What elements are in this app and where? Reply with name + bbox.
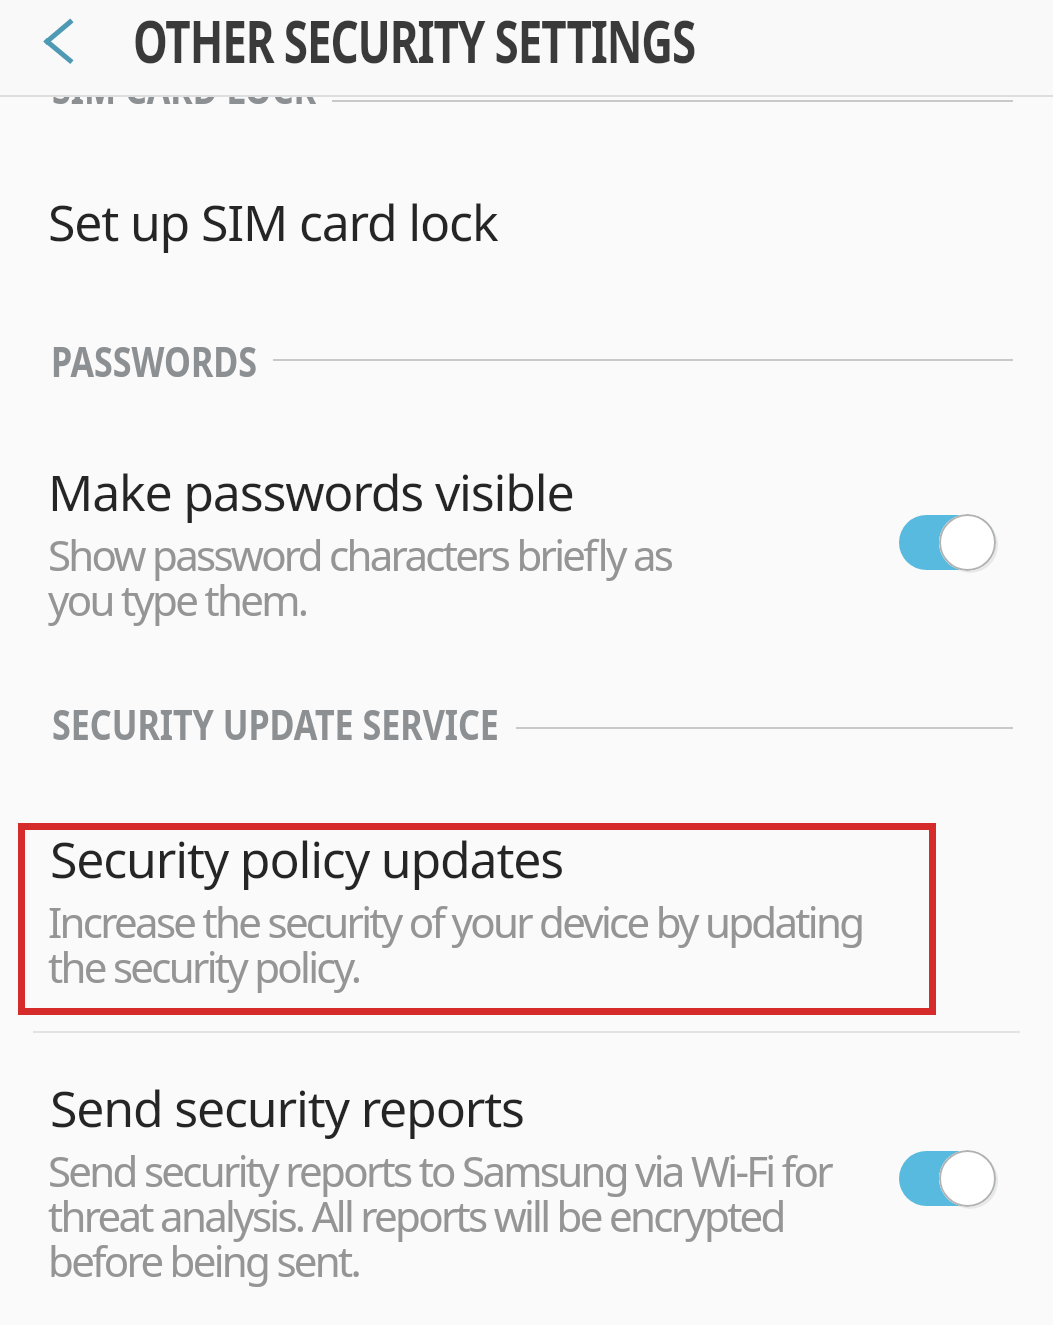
button[interactable] (899, 515, 996, 570)
button[interactable] (42, 16, 76, 68)
staticText: Security policy updates (50, 825, 563, 893)
button[interactable] (25, 830, 929, 1008)
staticText: Make passwords visible (48, 458, 574, 526)
staticText: Send security reports (50, 1074, 524, 1142)
staticText: Set up SIM card lock (48, 188, 498, 256)
staticText: PASSWORDS (51, 333, 258, 389)
staticText: Increase the security of your device by … (48, 893, 863, 996)
staticText: SIM CARD LOCK (52, 60, 317, 116)
button[interactable] (899, 1151, 996, 1206)
staticText: OTHER SECURITY SETTINGS (133, 0, 695, 81)
staticText: SECURITY UPDATE SERVICE (52, 696, 499, 752)
staticText: Send security reports to Samsung via Wi-… (48, 1142, 831, 1290)
staticText: Show password characters briefly as you … (48, 526, 672, 629)
